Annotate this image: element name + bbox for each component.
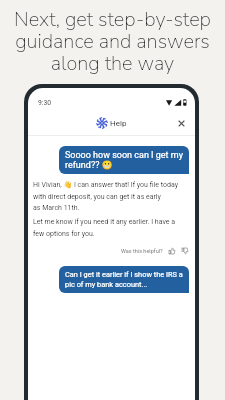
button[interactable]: Close <box>174 116 188 130</box>
staticText: Next, get step-by-step guidance and answ… <box>0 6 225 77</box>
staticText: Hi Vivian, 👋 I can answer that! If you f… <box>33 181 178 211</box>
staticText: Was this helpful? <box>121 248 163 254</box>
button[interactable]: Can I get it earlier if I show the IRS a… <box>59 266 189 293</box>
staticText: Let me know if you need it any earlier. … <box>33 218 176 237</box>
staticText: Soooo how soon can I get my refund?? 😬 <box>65 150 183 170</box>
staticText: Help <box>110 119 127 128</box>
button[interactable]: Not helpful <box>180 246 189 255</box>
staticText: 9:30 <box>38 99 52 107</box>
button[interactable]: Soooo how soon can I get my refund?? 😬 <box>59 146 189 174</box>
button[interactable]: Helpful <box>167 246 176 255</box>
staticText: Can I get it earlier if I show the IRS a… <box>65 270 183 289</box>
